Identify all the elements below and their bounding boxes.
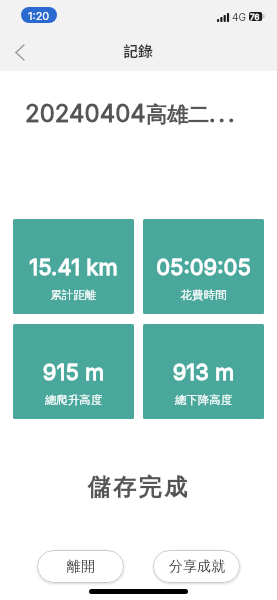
staticText: 記錄 [123,40,154,62]
staticText: 915 m [13,359,134,386]
button[interactable]: 15.41 km [13,219,134,314]
button[interactable]: 05:09:05 [143,219,264,314]
staticText: 離開 [67,558,95,576]
staticText: 分享成就 [169,558,225,576]
staticText: 15.41 km [13,254,134,281]
staticText: 76 [250,12,260,22]
staticText: 913 m [143,359,264,386]
staticText: 05:09:05 [143,254,264,281]
button[interactable]: 離開 [37,550,124,583]
staticText: 花費時間 [143,288,264,302]
staticText: 4G [232,11,246,23]
staticText: 1:20 [28,9,50,22]
staticText: 儲存完成 [0,473,277,502]
button[interactable]: Back [5,38,34,67]
staticText: 總下降高度 [143,393,264,407]
staticText: 20240404高雄二... [25,99,238,128]
button[interactable]: 分享成就 [153,550,240,583]
button[interactable]: 913 m [143,324,264,419]
staticText: 累計距離 [13,288,134,302]
staticText: 總爬升高度 [13,393,134,407]
button[interactable]: 915 m [13,324,134,419]
